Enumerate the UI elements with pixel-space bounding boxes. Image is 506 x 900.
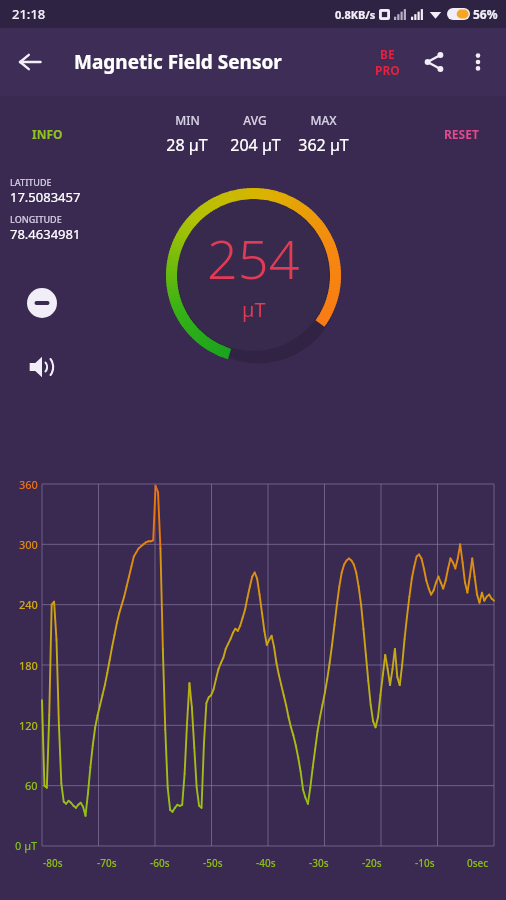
button[interactable]: RESET — [426, 99, 496, 169]
staticText: 204 µT — [230, 134, 281, 156]
staticText: 60 — [25, 778, 38, 793]
staticText: BE — [380, 46, 395, 62]
button[interactable]: Share — [412, 40, 456, 84]
staticText: 360 — [19, 477, 38, 492]
staticText: 0sec — [467, 856, 489, 870]
staticText: 300 — [19, 537, 38, 552]
staticText: RESET — [444, 126, 479, 142]
staticText: µT — [242, 296, 266, 323]
staticText: 120 — [19, 718, 38, 733]
staticText: AVG — [243, 112, 267, 128]
button[interactable]: Back — [6, 38, 54, 86]
staticText: 0.8KB/s — [335, 7, 376, 22]
staticText: 0 µT — [15, 838, 38, 853]
staticText: 78.4634981 — [10, 225, 81, 243]
staticText: -80s — [43, 856, 63, 870]
staticText: 17.5083457 — [10, 188, 81, 206]
staticText: 254 — [207, 221, 300, 295]
staticText: PRO — [375, 62, 400, 78]
staticText: -10s — [415, 856, 435, 870]
staticText: Magnetic Field Sensor — [74, 49, 282, 75]
staticText: MIN — [175, 112, 200, 128]
staticText: 240 — [19, 597, 38, 612]
staticText: LATITUDE — [10, 176, 52, 188]
staticText: -40s — [256, 856, 276, 870]
staticText: -50s — [203, 856, 223, 870]
button[interactable]: Pause recording — [24, 285, 60, 321]
staticText: 28 µT — [166, 134, 208, 156]
staticText: 362 µT — [298, 134, 349, 156]
button[interactable]: More options — [456, 40, 500, 84]
staticText: 21:18 — [12, 5, 46, 23]
staticText: 180 — [19, 658, 38, 673]
button[interactable]: INFO — [14, 101, 80, 167]
staticText: -30s — [309, 856, 329, 870]
staticText: MAX — [310, 112, 337, 128]
staticText: -20s — [362, 856, 382, 870]
button[interactable]: Sound on — [24, 349, 60, 385]
staticText: -60s — [150, 856, 170, 870]
staticText: INFO — [32, 126, 63, 142]
staticText: 56% — [473, 6, 498, 22]
staticText: LONGITUDE — [10, 213, 62, 225]
button[interactable]: BE — [369, 42, 406, 82]
staticText: -70s — [97, 856, 117, 870]
